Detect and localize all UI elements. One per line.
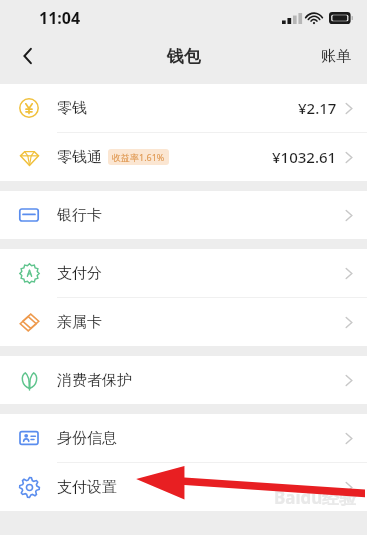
staticText: 身份信息 (57, 429, 117, 448)
staticText: 零钱 (57, 99, 87, 118)
staticText: 账单 (321, 47, 351, 66)
staticText: 收益率1.61% (112, 151, 165, 163)
button[interactable]: 支付分 (0, 249, 367, 298)
button[interactable]: 身份信息 (0, 414, 367, 463)
staticText: Baidu经验 (274, 486, 357, 509)
button[interactable]: 账单 (305, 39, 367, 74)
staticText: 11:04 (39, 7, 81, 29)
button[interactable]: 银行卡 (0, 191, 367, 239)
staticText: 零钱通 (57, 148, 102, 167)
staticText: 支付设置 (57, 478, 117, 497)
staticText: 亲属卡 (57, 313, 102, 332)
staticText: 银行卡 (57, 206, 102, 225)
staticText: 消费者保护 (57, 371, 132, 390)
button[interactable]: 消费者保护 (0, 356, 367, 404)
staticText: 钱包 (167, 46, 201, 67)
staticText: 支付分 (57, 264, 102, 283)
button[interactable]: 零钱通 (0, 133, 367, 181)
staticText: ¥2.17 (298, 98, 337, 118)
button[interactable]: 零钱 (0, 84, 367, 133)
button[interactable]: 亲属卡 (0, 298, 367, 346)
button[interactable]: 支付设置 (0, 463, 367, 511)
staticText: ¥1032.61 (272, 147, 337, 167)
button[interactable]: Back (8, 36, 48, 76)
